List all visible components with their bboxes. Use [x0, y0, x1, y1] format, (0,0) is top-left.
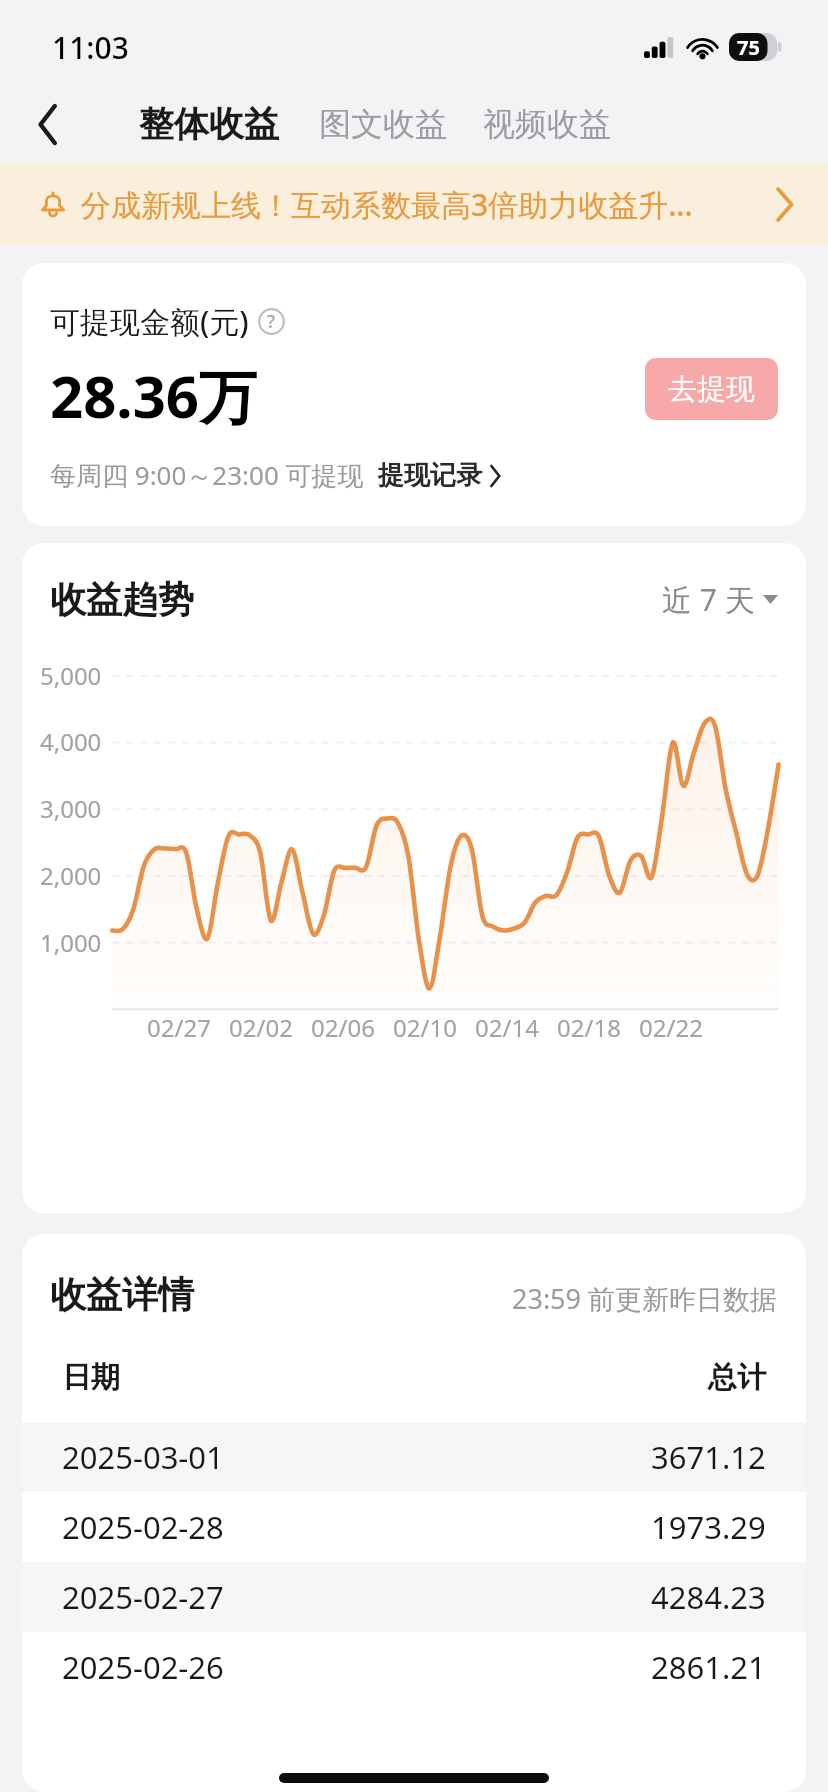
button[interactable]: 近 7 天: [662, 579, 778, 620]
staticText: 2025-02-26: [62, 1646, 224, 1688]
button[interactable]: 去提现: [645, 358, 778, 420]
staticText: 75: [737, 34, 760, 61]
staticText: 2025-02-27: [62, 1576, 224, 1618]
staticText: 近 7 天: [662, 579, 755, 620]
staticText: 分成新规上线！互动系数最高3倍助力收益升...: [81, 184, 762, 225]
staticText: 提现记录: [378, 459, 482, 492]
button[interactable]: 视频收益: [478, 97, 616, 151]
staticText: 02/18: [548, 1011, 630, 1044]
button[interactable]: 说明: [258, 308, 285, 335]
button[interactable]: 提现记录: [378, 459, 501, 492]
staticText: 02/10: [384, 1011, 466, 1044]
staticText: 图文收益: [319, 104, 447, 144]
staticText: 2025-03-01: [62, 1436, 224, 1478]
staticText: ?: [267, 309, 276, 334]
staticText: 5,000: [40, 659, 102, 692]
staticText: 3671.12: [651, 1436, 766, 1478]
staticText: 2861.21: [651, 1646, 766, 1688]
button[interactable]: 2025-02-28: [22, 1492, 806, 1562]
staticText: 去提现: [668, 371, 755, 408]
button[interactable]: Back: [18, 94, 78, 154]
staticText: 23:59 前更新昨日数据: [512, 1280, 778, 1317]
staticText: 02/02: [220, 1011, 302, 1044]
staticText: 每周四 9:00～23:00 可提现: [50, 457, 364, 493]
button[interactable]: 2025-02-27: [22, 1562, 806, 1632]
staticText: 3,000: [40, 792, 102, 825]
staticText: 02/14: [466, 1011, 548, 1044]
button[interactable]: 整体收益: [134, 95, 284, 153]
staticText: 4,000: [40, 725, 102, 758]
staticText: 日期: [62, 1359, 120, 1396]
staticText: 11:03: [52, 27, 129, 68]
staticText: 视频收益: [483, 104, 611, 144]
staticText: 可提现金额(元): [50, 301, 249, 342]
staticText: 2025-02-28: [62, 1506, 224, 1548]
button[interactable]: 2025-03-01: [22, 1422, 806, 1492]
staticText: 收益详情: [50, 1272, 194, 1317]
staticText: 28.36万: [50, 356, 258, 435]
staticText: 1,000: [40, 926, 102, 959]
button[interactable]: 图文收益: [314, 97, 452, 151]
staticText: 4284.23: [651, 1576, 766, 1618]
staticText: 02/27: [138, 1011, 220, 1044]
staticText: 02/22: [630, 1011, 712, 1044]
staticText: 2,000: [40, 859, 102, 892]
staticText: 整体收益: [139, 102, 279, 146]
staticText: 收益趋势: [50, 577, 194, 622]
staticText: 02/06: [302, 1011, 384, 1044]
staticText: 总计: [708, 1359, 766, 1396]
button[interactable]: 分成新规上线！互动系数最高3倍助力收益升...: [0, 162, 828, 246]
staticText: 1973.29: [651, 1506, 766, 1548]
button[interactable]: 2025-02-26: [22, 1632, 806, 1702]
